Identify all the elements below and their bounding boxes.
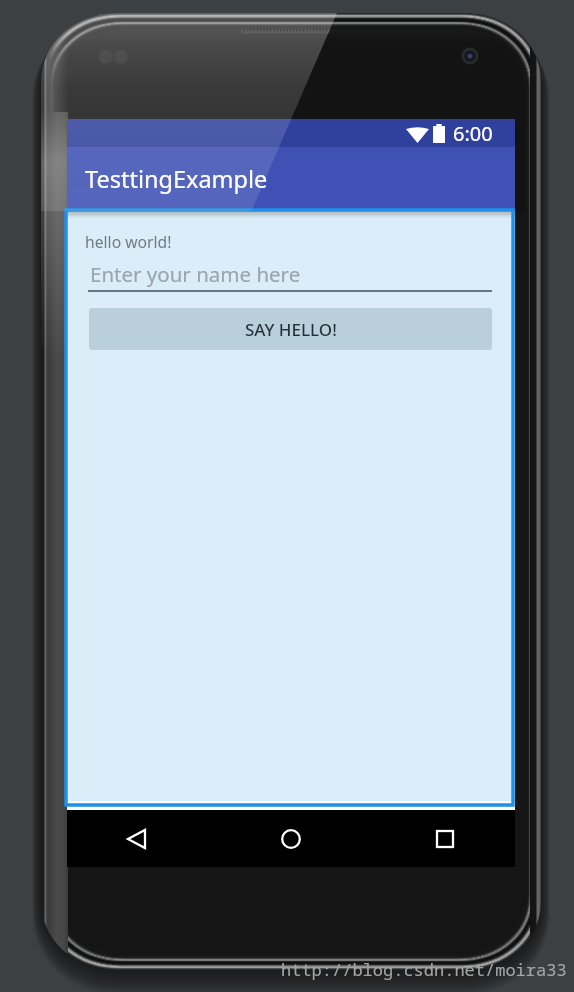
button[interactable]: Back [71,810,201,867]
staticText: SAY HELLO! [245,318,337,341]
staticText: http://blog.csdn.net/moira33 [281,958,567,981]
staticText: 6:00 [453,120,493,147]
button[interactable]: SAY HELLO! [89,308,492,350]
staticText: hello world! [85,231,172,252]
button[interactable]: Recent apps [380,810,510,867]
staticText: Enter your name here [90,260,301,288]
button[interactable]: Home [226,810,356,867]
staticText: TesttingExample [85,163,268,195]
